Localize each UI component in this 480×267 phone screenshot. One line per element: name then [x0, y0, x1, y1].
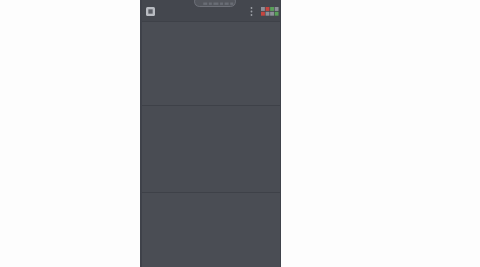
button[interactable]: Status indicators — [261, 7, 278, 16]
button[interactable]: App menu — [146, 7, 155, 16]
button[interactable]: More options — [247, 3, 255, 19]
